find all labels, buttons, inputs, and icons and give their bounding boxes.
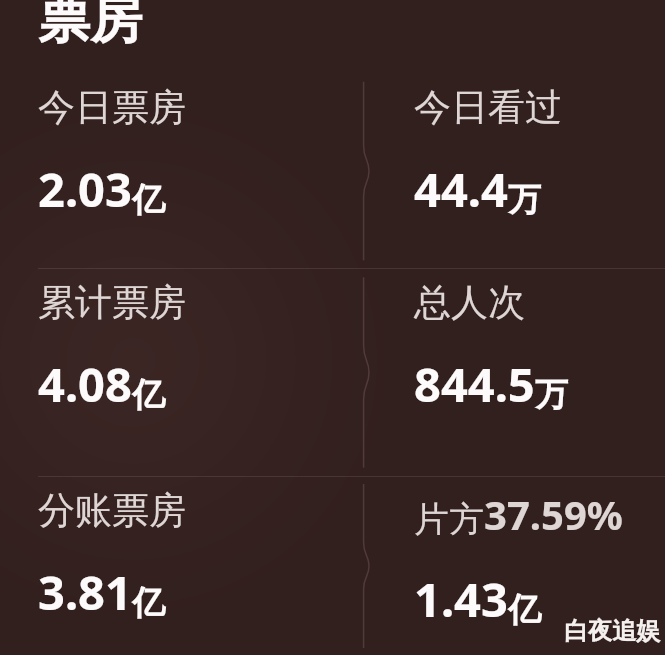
staticText: 亿: [132, 374, 165, 416]
staticText: 总人次: [414, 279, 525, 326]
staticText: 37.59%: [484, 487, 623, 541]
staticText: 亿: [132, 179, 165, 221]
staticText: 分账票房: [38, 487, 186, 534]
staticText: 累计票房: [38, 279, 186, 326]
button[interactable]: 分账票房: [0, 477, 365, 655]
button[interactable]: 累计票房: [0, 269, 365, 476]
button[interactable]: 总人次: [365, 269, 665, 476]
staticText: 票房: [38, 0, 142, 53]
staticText: 万: [535, 374, 568, 416]
staticText: 2.03: [38, 157, 132, 221]
staticText: 片方: [414, 497, 484, 541]
staticText: 844.5: [414, 352, 535, 416]
staticText: 亿: [132, 582, 165, 624]
staticText: 3.81: [38, 560, 132, 624]
staticText: 44.4: [414, 157, 508, 221]
staticText: 亿: [508, 589, 541, 631]
staticText: 4.08: [38, 352, 132, 416]
staticText: 1.43: [414, 567, 508, 631]
button[interactable]: 今日看过: [365, 74, 665, 268]
button[interactable]: 今日票房: [0, 74, 365, 268]
staticText: 今日看过: [414, 84, 562, 131]
staticText: 万: [508, 179, 541, 221]
button[interactable]: 片方: [365, 477, 665, 655]
staticText: 今日票房: [38, 84, 186, 131]
staticText: 白夜追娱: [564, 616, 660, 646]
